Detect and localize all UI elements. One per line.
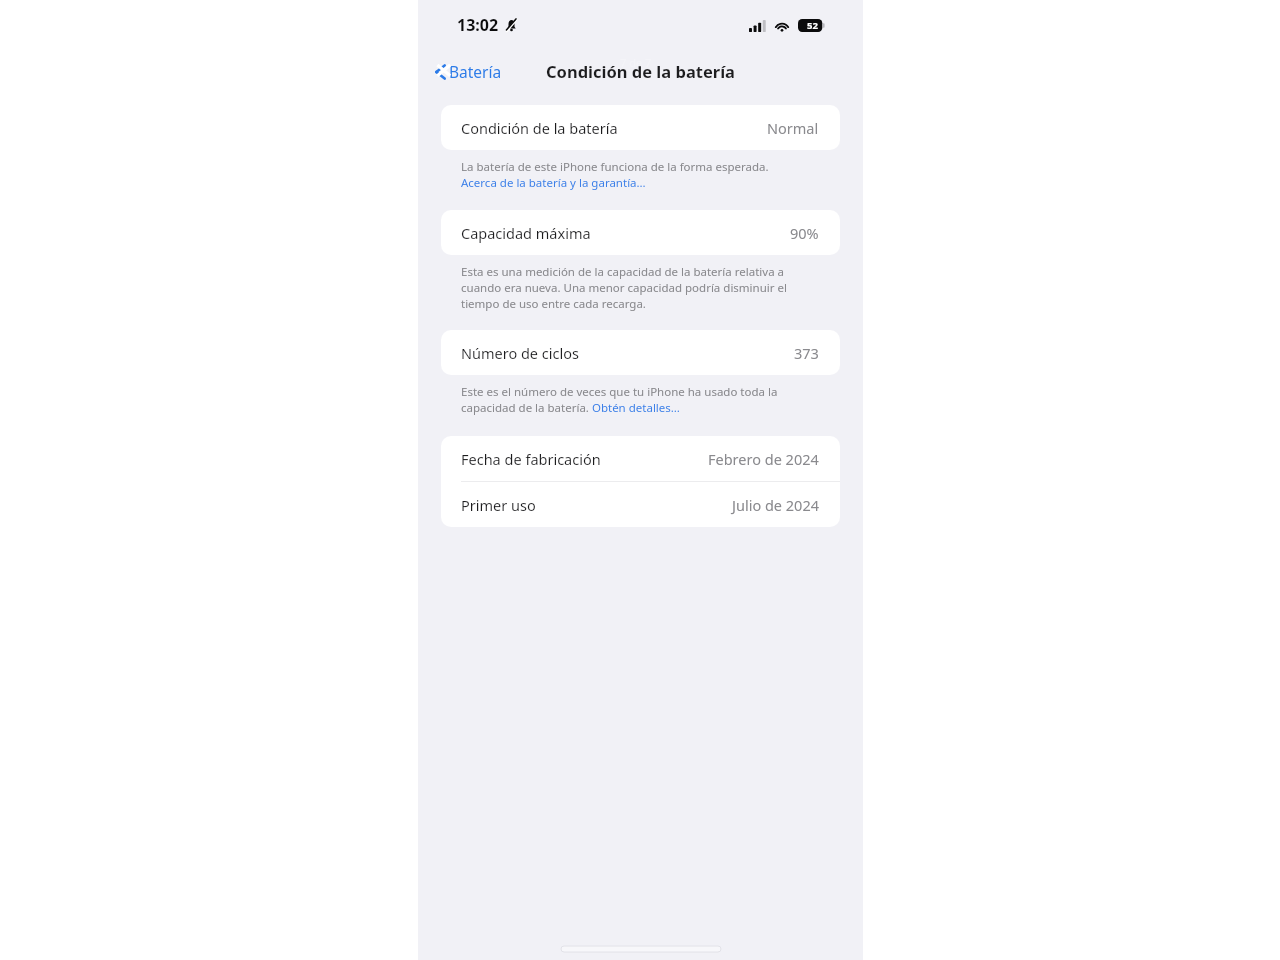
staticText: Acerca de la batería y la garantía… — [461, 175, 646, 191]
staticText: Condición de la batería — [546, 60, 735, 82]
button[interactable]: Primer uso — [441, 482, 840, 527]
button[interactable]: capacidad de la batería. Obtén detalles… — [461, 400, 680, 416]
staticText: Normal — [767, 118, 819, 138]
button[interactable]: Número de ciclos — [441, 330, 840, 375]
staticText: Fecha de fabricación — [461, 449, 601, 469]
button[interactable]: Condición de la batería — [441, 105, 840, 150]
staticText: cuando era nueva. Una menor capacidad po… — [461, 280, 787, 296]
staticText: La batería de este iPhone funciona de la… — [461, 159, 769, 175]
staticText: Primer uso — [461, 495, 536, 515]
staticText: Este es el número de veces que tu iPhone… — [461, 384, 778, 400]
staticText: Batería — [449, 61, 502, 82]
staticText: Condición de la batería — [461, 118, 618, 138]
button[interactable]: Batería — [430, 57, 506, 86]
button[interactable]: Fecha de fabricación — [441, 436, 840, 481]
staticText: Capacidad máxima — [461, 223, 591, 243]
staticText: 373 — [794, 343, 819, 363]
staticText: 52 — [807, 19, 818, 32]
staticText: Esta es una medición de la capacidad de … — [461, 264, 785, 280]
staticText: capacidad de la batería. Obtén detalles… — [461, 400, 680, 416]
button[interactable]: Acerca de la batería y la garantía… — [461, 175, 646, 191]
staticText: Número de ciclos — [461, 343, 579, 363]
staticText: Julio de 2024 — [732, 495, 819, 515]
button[interactable]: Capacidad máxima — [441, 210, 840, 255]
staticText: 90% — [790, 223, 819, 243]
staticText: 7 de 7 — [620, 55, 652, 70]
staticText: 13:02 — [457, 14, 499, 36]
staticText: tiempo de uso entre cada recarga. — [461, 296, 646, 312]
staticText: Febrero de 2024 — [708, 449, 819, 469]
